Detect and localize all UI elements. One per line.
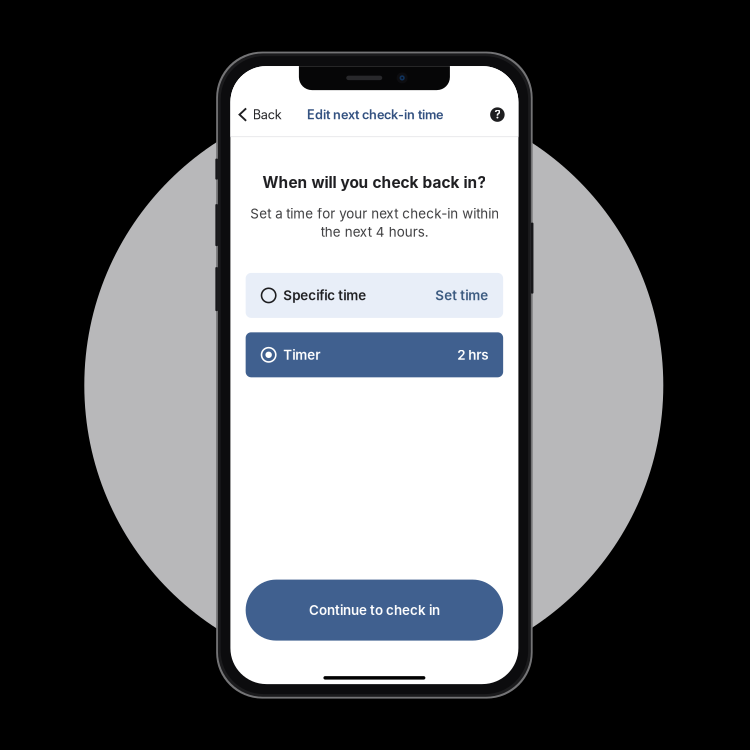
button[interactable]: Timer (246, 332, 503, 377)
staticText: Set time (435, 287, 488, 303)
staticText: Continue to check in (309, 602, 440, 618)
staticText: When will you check back in? (262, 173, 486, 192)
staticText: Edit next check-in time (307, 107, 443, 122)
button[interactable]: Help (480, 99, 518, 130)
staticText: 2 hrs (457, 347, 488, 363)
button[interactable]: Back (230, 99, 292, 130)
staticText: Set a time for your next check-in within… (250, 206, 499, 240)
button[interactable]: Continue to check in (246, 580, 503, 641)
button[interactable]: Specific time (246, 273, 503, 318)
staticText: Specific time (283, 287, 366, 303)
staticText: ? (494, 107, 500, 121)
staticText: Timer (283, 347, 320, 363)
staticText: Back (253, 107, 282, 122)
